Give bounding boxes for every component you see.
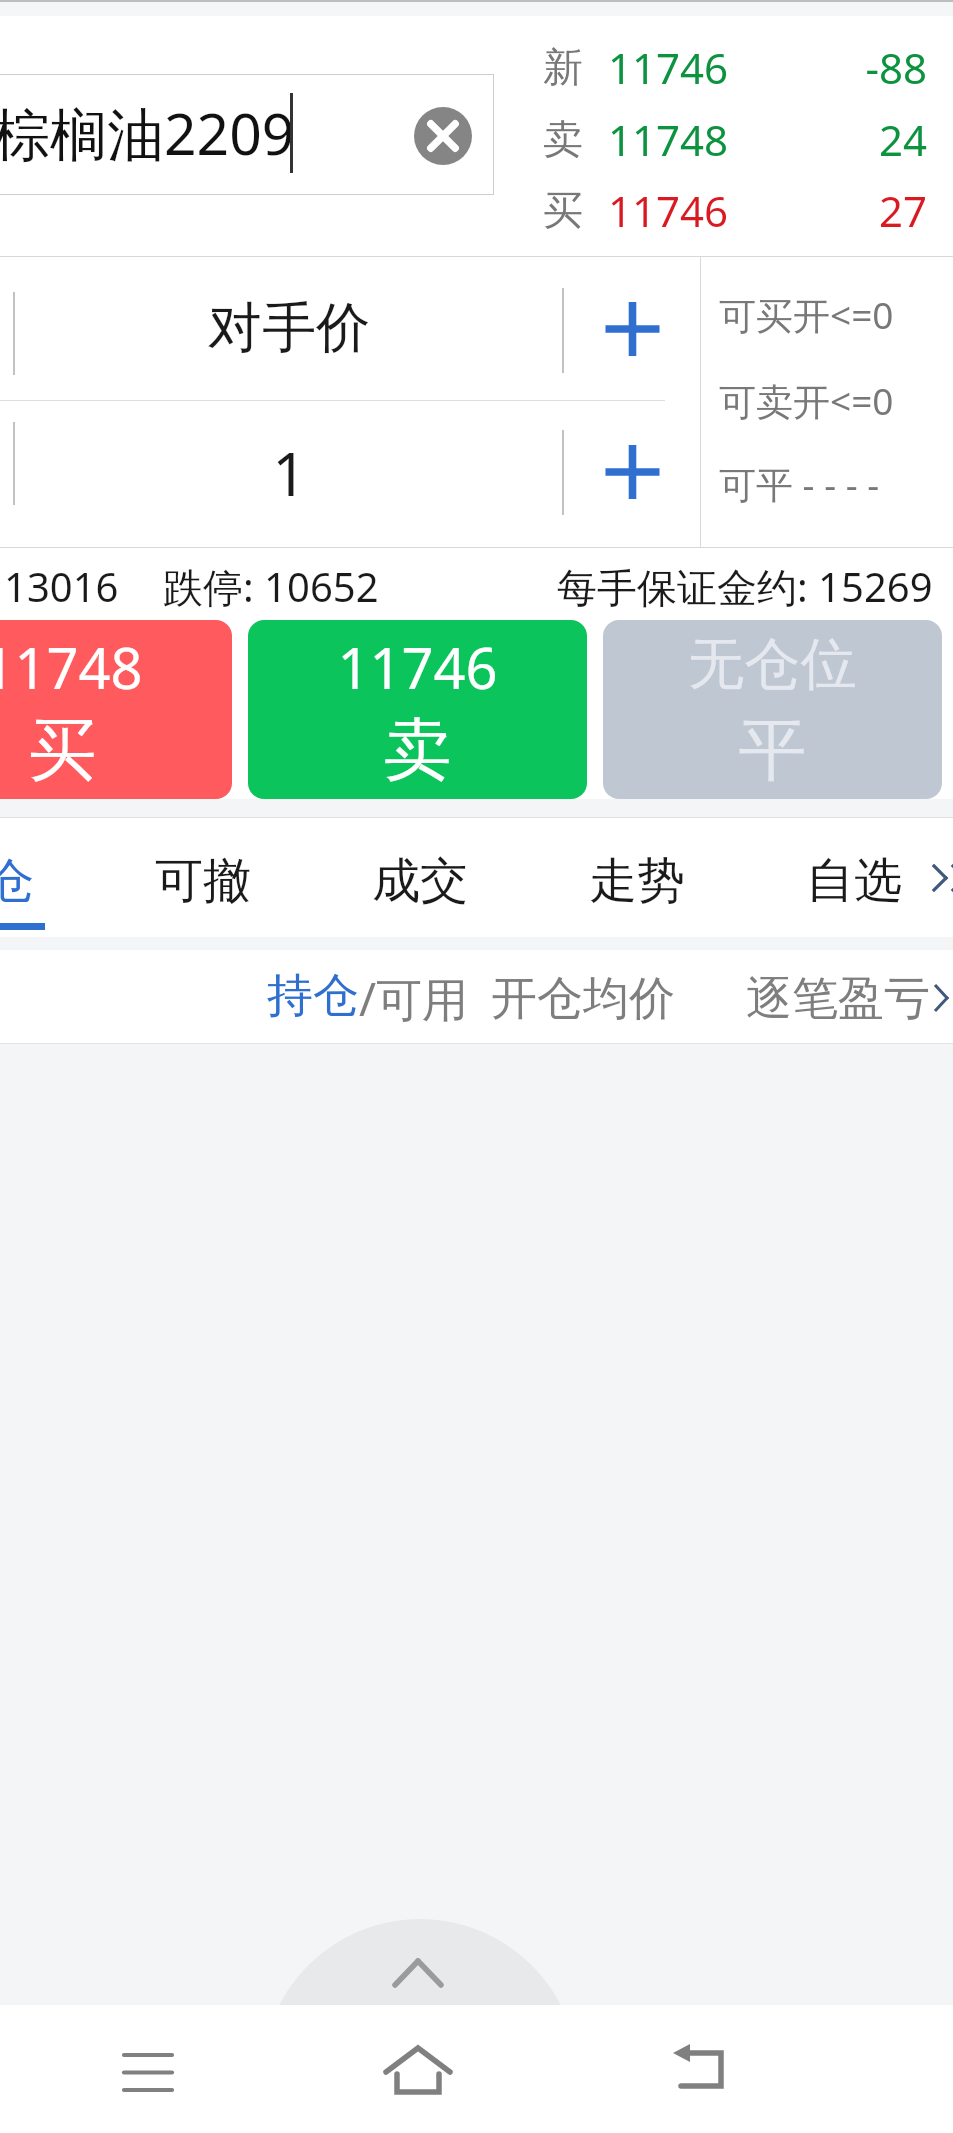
- staticText: 可平 - - - -: [719, 458, 880, 509]
- staticText: 可买开<=0: [719, 289, 894, 340]
- button[interactable]: 持仓: [0, 818, 45, 937]
- button[interactable]: Increase: [578, 274, 688, 384]
- button[interactable]: Decrease: [0, 257, 140, 400]
- staticText: 卖: [248, 708, 587, 794]
- staticText: 买: [543, 185, 583, 235]
- button[interactable]: 走势: [578, 818, 696, 937]
- staticText: 11748: [608, 111, 729, 168]
- button[interactable]: 自选: [795, 818, 913, 937]
- button[interactable]: Expand panel: [261, 1919, 581, 2005]
- staticText: 走势: [589, 851, 685, 911]
- button[interactable]: 无仓位: [603, 620, 942, 799]
- staticText: /可用: [359, 967, 469, 1030]
- staticText: 27: [474, 182, 927, 239]
- button[interactable]: 棕榈油2209: [0, 74, 494, 195]
- staticText: 可卖开<=0: [719, 375, 894, 426]
- staticText: 11748: [0, 629, 232, 705]
- button[interactable]: Back: [640, 2024, 760, 2114]
- button[interactable]: 成交: [361, 818, 479, 937]
- button[interactable]: Recents: [88, 2024, 208, 2114]
- staticText: 跌停: 10652: [163, 559, 379, 614]
- staticText: 无仓位: [603, 629, 942, 700]
- staticText: 新: [543, 42, 583, 92]
- button[interactable]: Increase: [578, 417, 688, 527]
- button[interactable]: Home: [358, 2024, 478, 2114]
- staticText: 卖: [543, 114, 583, 164]
- button[interactable]: More columns: [925, 970, 953, 1024]
- staticText: 每手保证金约: 15269: [557, 559, 933, 614]
- button[interactable]: More tabs: [923, 842, 953, 912]
- staticText: 平: [603, 708, 942, 794]
- staticText: 11746: [608, 39, 729, 96]
- staticText: 11746: [608, 182, 729, 239]
- staticText: 逐笔盈亏: [746, 970, 930, 1028]
- staticText: -88: [474, 39, 927, 96]
- button[interactable]: Clear: [414, 107, 472, 165]
- staticText: 买: [0, 708, 232, 794]
- staticText: 自选: [806, 851, 902, 911]
- staticText: 1: [272, 432, 307, 514]
- staticText: 对手价: [208, 294, 370, 362]
- staticText: 开仓均价: [491, 970, 675, 1028]
- staticText: 持仓: [267, 967, 359, 1025]
- staticText: 13016: [4, 559, 119, 613]
- staticText: 持仓: [0, 851, 34, 911]
- button[interactable]: 可撤: [144, 818, 262, 937]
- staticText: 棕榈油2209: [0, 94, 295, 172]
- button[interactable]: 买: [500, 174, 953, 246]
- staticText: 24: [474, 111, 927, 168]
- button[interactable]: 新: [500, 31, 953, 103]
- staticText: 11746: [248, 629, 587, 705]
- button[interactable]: 卖: [500, 103, 953, 175]
- button[interactable]: Decrease: [0, 401, 140, 547]
- staticText: 可撤: [155, 851, 251, 911]
- staticText: 成交: [372, 851, 468, 911]
- button[interactable]: 11746: [248, 620, 587, 799]
- button[interactable]: 11748: [0, 620, 232, 799]
